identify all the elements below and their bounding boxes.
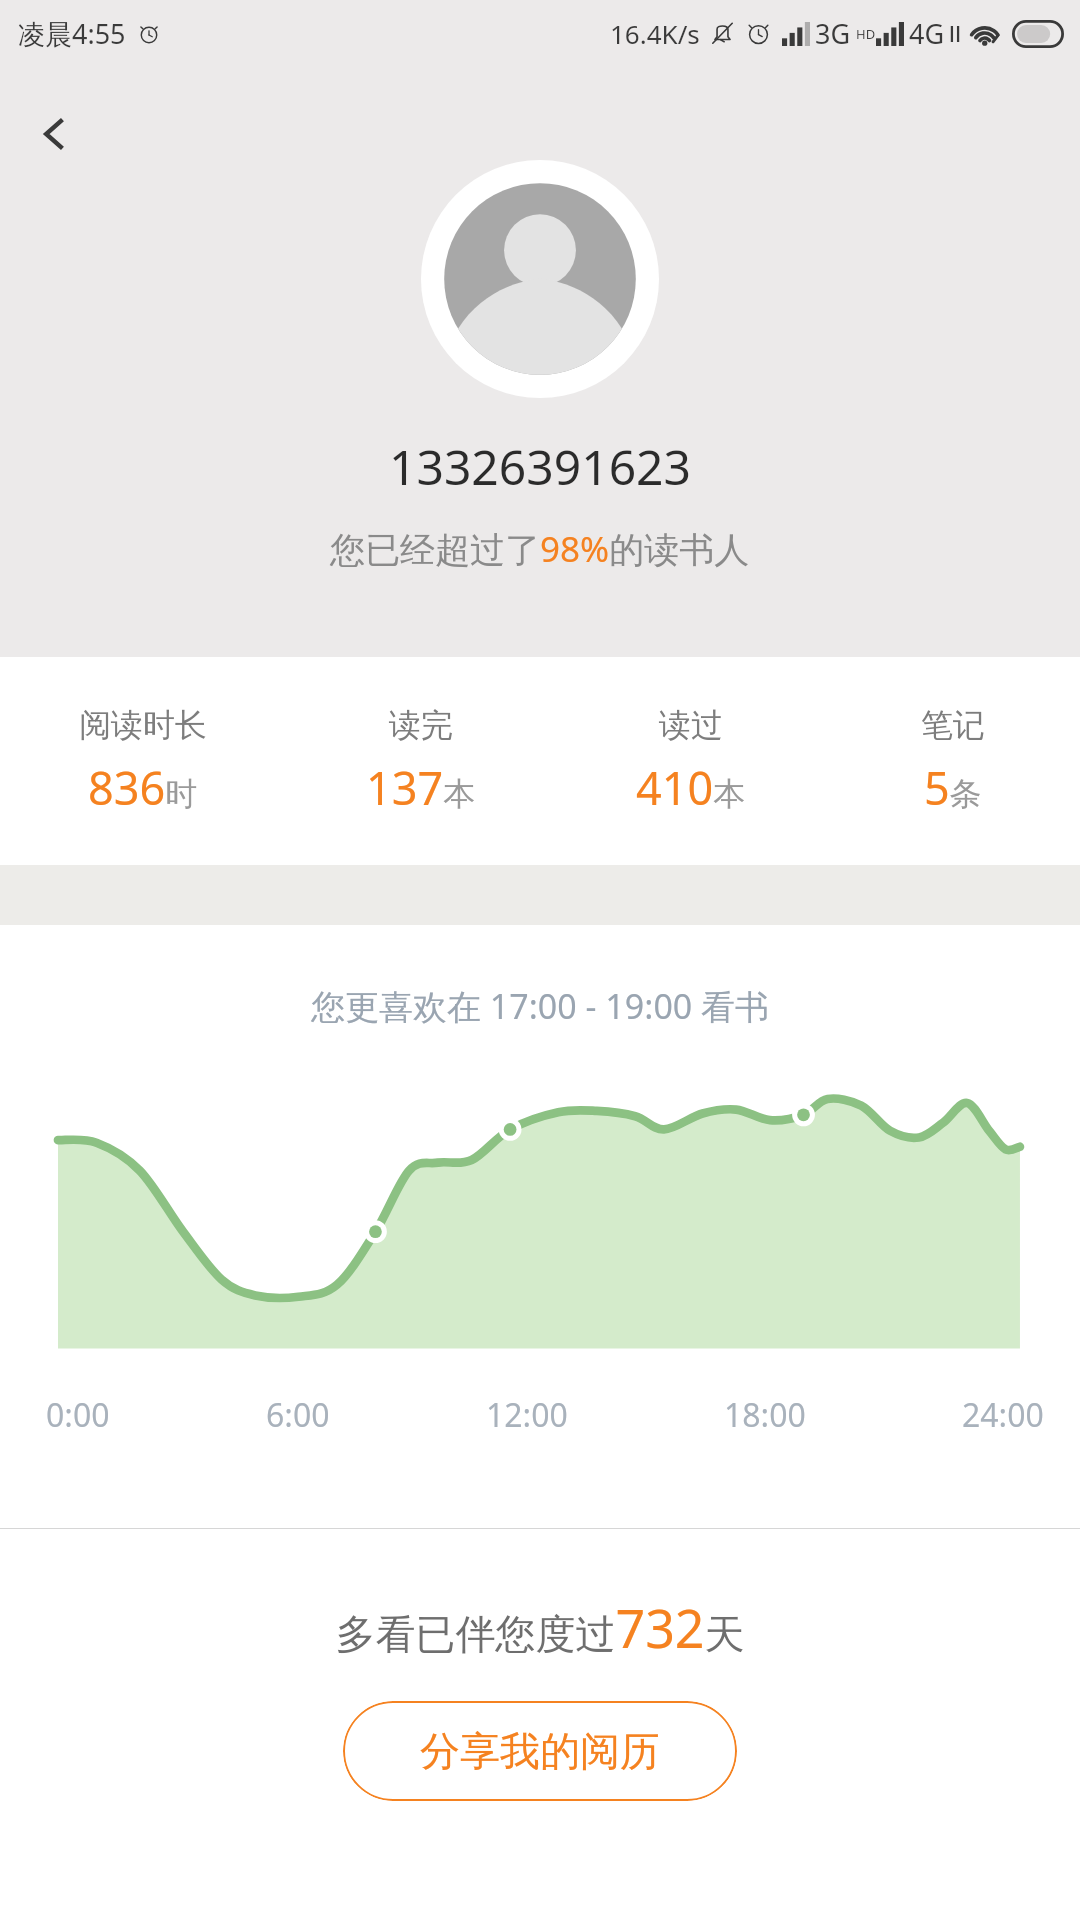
staticText: 您已经超过了98%的读书人 [330,525,750,573]
staticText: 836时 [88,757,198,818]
button[interactable]: 读过 [556,705,826,818]
button[interactable]: 阅读时长 [0,705,286,818]
staticText: 笔记 [921,705,985,745]
staticText: 分享我的阅历 [420,1726,660,1776]
button[interactable]: Back [14,94,94,174]
staticText: HD [856,25,876,43]
staticText: 18:00 [724,1393,806,1437]
staticText: 24:00 [962,1393,1044,1437]
staticText: 137本 [366,757,476,818]
staticText: 6:00 [266,1393,330,1437]
staticText: 读过 [659,705,723,745]
staticText: 您更喜欢在 17:00 - 19:00 看书 [311,983,770,1029]
staticText: 16.4K/s [610,16,700,51]
staticText: 多看已伴您度过732天 [335,1592,745,1663]
button[interactable]: 读完 [286,705,556,818]
button[interactable]: 笔记 [826,705,1080,818]
staticText: 12:00 [486,1393,568,1437]
staticText: 4G [909,15,945,52]
staticText: 凌晨4:55 [18,15,126,52]
staticText: 3G [815,15,851,52]
staticText: 13326391623 [389,434,692,499]
staticText: 0:00 [46,1393,110,1437]
staticText: 阅读时长 [79,705,207,745]
button[interactable]: 分享我的阅历 [343,1701,737,1801]
staticText: 5条 [924,757,982,818]
staticText: 410本 [636,757,746,818]
staticText: 读完 [389,705,453,745]
